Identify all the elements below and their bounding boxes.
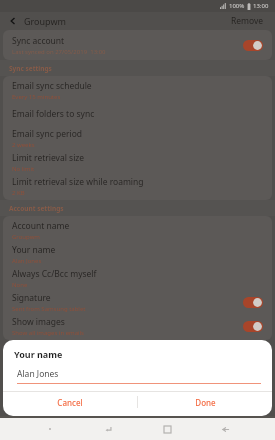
staticText: Alan Jones — [12, 257, 42, 265]
staticText: Sync settings — [9, 64, 52, 73]
button[interactable]: Sync account — [3, 32, 272, 58]
button[interactable]: Your name — [3, 242, 272, 266]
staticText: Your name — [14, 348, 63, 360]
staticText: Show images — [12, 316, 65, 328]
button[interactable]: Back — [216, 420, 234, 438]
button[interactable]: Email sync period — [3, 126, 272, 150]
staticText: Limit retrieval size — [12, 152, 85, 164]
staticText: None — [12, 281, 28, 289]
button[interactable]: Menu — [41, 420, 59, 438]
button[interactable]: Toggle — [243, 40, 263, 51]
button[interactable]: Always Cc/Bcc myself — [3, 266, 272, 290]
staticText: Show all images in emails — [12, 329, 84, 337]
staticText: 13:00 — [253, 2, 269, 10]
button[interactable]: Cancel — [3, 392, 137, 412]
staticText: Always Cc/Bcc myself — [12, 268, 97, 280]
button[interactable]: Remove — [229, 12, 266, 30]
staticText: 100% — [229, 2, 245, 10]
staticText: Sync account — [12, 35, 65, 47]
button[interactable]: Signature — [3, 290, 272, 314]
staticText: Cancel — [57, 397, 83, 408]
staticText: Groupwm — [12, 233, 40, 241]
staticText: Email sync schedule — [12, 80, 92, 92]
button[interactable]: Navigate up — [6, 14, 20, 28]
button[interactable]: Done — [138, 392, 272, 412]
staticText: Account name — [12, 220, 70, 232]
button[interactable]: Email sync schedule — [3, 78, 272, 102]
button[interactable]: Hide keyboard — [99, 420, 117, 438]
button[interactable]: Limit retrieval size while roaming — [3, 174, 272, 198]
staticText: No limit — [12, 165, 35, 173]
staticText: Signature — [12, 292, 51, 304]
button[interactable]: Recent apps — [158, 420, 176, 438]
staticText: Limit retrieval size while roaming — [12, 176, 144, 188]
button[interactable]: Account name — [3, 218, 272, 242]
staticText: Done — [195, 397, 216, 408]
staticText: Your name — [12, 244, 56, 256]
staticText: Account settings — [9, 204, 64, 213]
staticText: 2 KB — [12, 189, 25, 197]
staticText: Last synced on 27/05/2019 13:00 — [12, 48, 106, 56]
staticText: 2 weeks — [12, 141, 35, 149]
staticText: Email sync period — [12, 128, 83, 140]
staticText: Groupwm — [24, 15, 66, 27]
button[interactable]: Toggle — [243, 297, 263, 308]
staticText: Alan Jones — [17, 368, 59, 380]
button[interactable]: Limit retrieval size — [3, 150, 272, 174]
button[interactable]: Email folders to sync — [3, 102, 272, 126]
staticText: Email folders to sync — [12, 108, 95, 120]
staticText: Remove — [231, 15, 264, 27]
button[interactable]: Show images — [3, 314, 272, 338]
button[interactable]: Toggle — [243, 321, 263, 332]
staticText: Every 15 minutes — [12, 93, 61, 101]
button[interactable]: Alan Jones — [17, 368, 261, 384]
staticText: Sent from Samsung tablet — [12, 305, 86, 313]
